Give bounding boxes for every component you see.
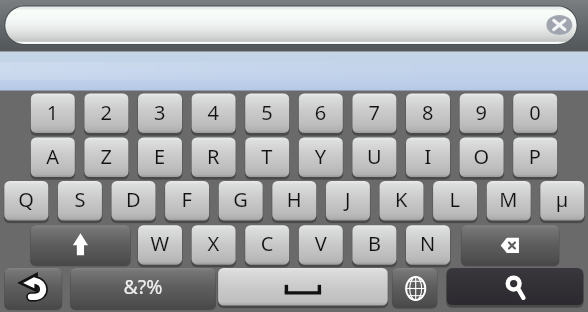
button[interactable]: H: [272, 181, 316, 221]
button[interactable]: R: [192, 138, 236, 178]
button[interactable]: 7: [352, 94, 396, 134]
button[interactable]: M: [487, 181, 531, 221]
button[interactable]: Clear text: [545, 12, 573, 40]
button[interactable]: Q: [4, 181, 48, 221]
button[interactable]: D: [112, 181, 156, 221]
button[interactable]: Backspace: [461, 225, 559, 264]
button[interactable]: O: [460, 138, 504, 178]
button[interactable]: L: [433, 181, 477, 221]
button[interactable]: 0: [513, 94, 557, 134]
button[interactable]: Back: [5, 268, 62, 308]
button[interactable]: W: [138, 225, 182, 265]
button[interactable]: U: [352, 138, 396, 178]
button[interactable]: K: [379, 181, 423, 221]
button[interactable]: N: [406, 225, 450, 265]
button[interactable]: T: [245, 138, 289, 178]
button[interactable]: 4: [192, 94, 236, 134]
button[interactable]: 2: [84, 94, 128, 134]
button[interactable]: Search: [447, 268, 584, 305]
button[interactable]: 8: [406, 94, 450, 134]
button[interactable]: Shift: [31, 225, 131, 264]
button[interactable]: &?%: [71, 268, 216, 308]
button[interactable]: X: [192, 225, 236, 265]
button[interactable]: I: [406, 138, 450, 178]
button[interactable]: F: [165, 181, 209, 221]
button[interactable]: J: [326, 181, 370, 221]
button[interactable]: 9: [460, 94, 504, 134]
button[interactable]: 5: [245, 94, 289, 134]
button[interactable]: E: [138, 138, 182, 178]
button[interactable]: Y: [299, 138, 343, 178]
button[interactable]: Space: [218, 268, 388, 306]
button[interactable]: 1: [31, 94, 75, 134]
button[interactable]: 3: [138, 94, 182, 134]
button[interactable]: A: [31, 138, 75, 178]
button[interactable]: 6: [299, 94, 343, 134]
button[interactable]: C: [245, 225, 289, 265]
button[interactable]: S: [58, 181, 102, 221]
button[interactable]: P: [513, 138, 557, 178]
button[interactable]: B: [352, 225, 396, 265]
button[interactable]: Change language: [393, 268, 437, 306]
button[interactable]: G: [219, 181, 263, 221]
button[interactable]: Z: [84, 138, 128, 178]
button[interactable]: Search text field: [6, 7, 577, 44]
button[interactable]: V: [299, 225, 343, 265]
button[interactable]: µ: [540, 181, 584, 221]
